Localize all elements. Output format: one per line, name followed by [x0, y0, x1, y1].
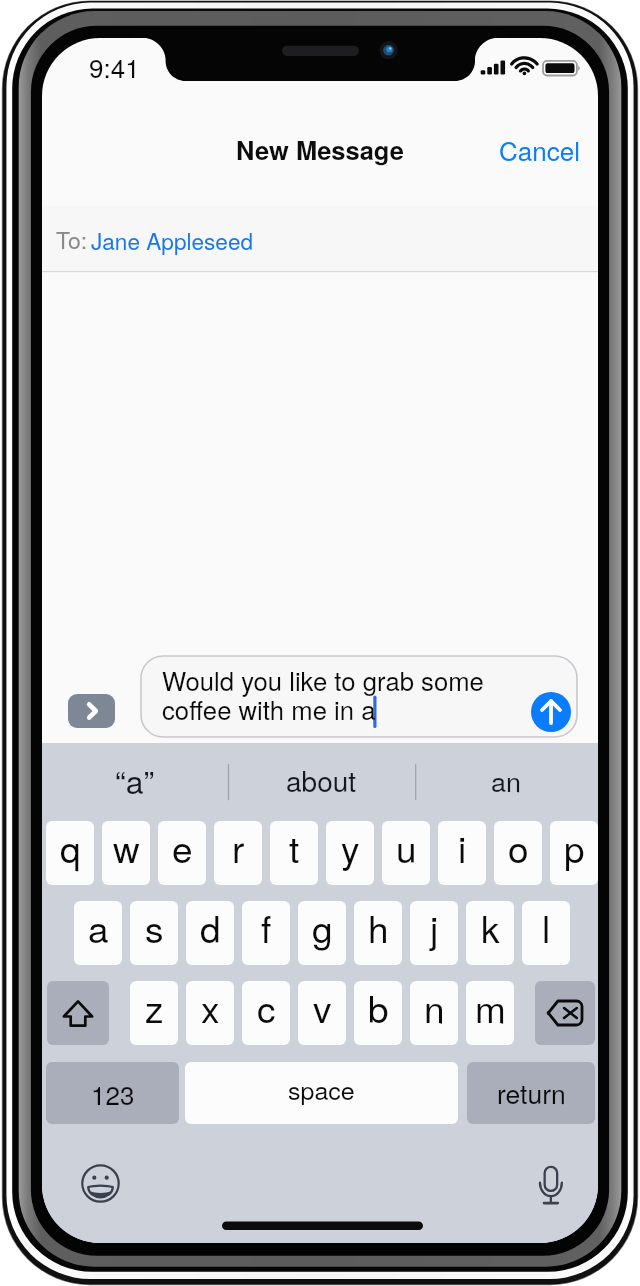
staticText: return	[497, 1074, 566, 1112]
staticText: l	[542, 901, 551, 954]
staticText: n	[424, 981, 445, 1034]
staticText: about	[286, 760, 357, 800]
staticText: x	[201, 981, 220, 1034]
staticText: b	[368, 981, 389, 1034]
button[interactable]: v	[298, 981, 346, 1045]
staticText: m	[475, 981, 506, 1034]
staticText: c	[257, 981, 276, 1034]
staticText: r	[232, 821, 245, 874]
button[interactable]: p	[550, 821, 598, 885]
staticText: 123	[91, 1075, 135, 1112]
staticText: g	[312, 901, 333, 954]
button[interactable]: b	[354, 981, 402, 1045]
button[interactable]: w	[102, 821, 150, 885]
button[interactable]: x	[186, 981, 234, 1045]
button[interactable]: Send	[531, 692, 571, 732]
button[interactable]: q	[46, 821, 94, 885]
staticText: s	[145, 901, 164, 954]
staticText: w	[113, 821, 140, 874]
button[interactable]: o	[494, 821, 542, 885]
button[interactable]: To:	[42, 206, 598, 271]
staticText: i	[458, 821, 467, 874]
button[interactable]: l	[522, 901, 570, 965]
staticText: To:	[56, 223, 88, 256]
staticText: a	[88, 901, 109, 954]
staticText: t	[289, 821, 300, 874]
button[interactable]: Expand apps	[68, 694, 115, 728]
button[interactable]: about	[228, 743, 415, 819]
button[interactable]: e	[158, 821, 206, 885]
staticText: y	[341, 821, 360, 874]
staticText: u	[396, 821, 417, 874]
button[interactable]: y	[326, 821, 374, 885]
button[interactable]: g	[298, 901, 346, 965]
button[interactable]: k	[466, 901, 514, 965]
button[interactable]: t	[270, 821, 318, 885]
button[interactable]: Backspace	[535, 981, 595, 1045]
button[interactable]: New Message	[236, 131, 404, 168]
button[interactable]: Emoji	[80, 1163, 121, 1204]
button[interactable]: f	[242, 901, 290, 965]
button[interactable]: Dictation	[531, 1160, 571, 1208]
staticText: 9:41	[89, 48, 140, 85]
button[interactable]: a	[74, 901, 122, 965]
staticText: o	[508, 821, 529, 874]
button[interactable]: h	[354, 901, 402, 965]
button[interactable]: “a”	[42, 743, 228, 819]
button[interactable]: r	[214, 821, 262, 885]
staticText: h	[368, 901, 389, 954]
staticText: j	[430, 901, 439, 954]
button[interactable]	[141, 656, 577, 737]
staticText: Jane Appleseed	[91, 224, 254, 256]
staticText: “a”	[115, 757, 155, 803]
staticText: f	[261, 901, 272, 954]
button[interactable]: c	[242, 981, 290, 1045]
button[interactable]: return	[467, 1062, 595, 1124]
button[interactable]: m	[466, 981, 514, 1045]
button[interactable]: space	[185, 1062, 458, 1124]
button[interactable]: u	[382, 821, 430, 885]
button[interactable]: 123	[46, 1062, 179, 1124]
button[interactable]: d	[186, 901, 234, 965]
staticText: e	[172, 821, 193, 874]
button[interactable]: s	[130, 901, 178, 965]
button[interactable]: an	[415, 743, 598, 819]
button[interactable]: Cancel	[480, 125, 598, 174]
staticText: q	[60, 821, 81, 874]
staticText: p	[564, 821, 585, 874]
button[interactable]: Shift	[47, 981, 109, 1045]
staticText: d	[200, 901, 221, 954]
staticText: Cancel	[499, 131, 580, 168]
staticText: space	[288, 1071, 355, 1107]
staticText: k	[481, 901, 500, 954]
staticText: Would you like to grab some coffee with …	[162, 661, 484, 727]
button[interactable]: z	[130, 981, 178, 1045]
staticText: v	[313, 981, 332, 1034]
button[interactable]: i	[438, 821, 486, 885]
button[interactable]: n	[410, 981, 458, 1045]
staticText: z	[145, 981, 164, 1034]
button[interactable]: j	[410, 901, 458, 965]
staticText: an	[491, 761, 522, 800]
